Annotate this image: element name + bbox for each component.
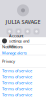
staticText: Account settings and info [9, 33, 29, 49]
button[interactable]: Notifications [0, 45, 46, 55]
staticText: Manage alerts [2, 50, 27, 56]
staticText: Terms of service [2, 86, 32, 91]
button[interactable]: Terms of service [0, 80, 46, 86]
button[interactable]: Privacy [0, 55, 46, 67]
button[interactable]: Terms of service [0, 92, 46, 98]
staticText: Privacy [2, 59, 15, 64]
button[interactable]: Terms of service [0, 74, 46, 80]
staticText: Notifications [2, 44, 23, 49]
staticText: Terms of service [2, 68, 32, 73]
staticText: Terms of service [2, 80, 32, 85]
staticText: Terms of service [2, 74, 32, 79]
button[interactable]: Terms of service [0, 86, 46, 92]
button[interactable]: Account settings and info [0, 37, 46, 44]
staticText: JULIA SAVAGE [5, 18, 40, 25]
staticText: Terms of service [2, 92, 32, 97]
button[interactable]: Terms of service [0, 68, 46, 74]
